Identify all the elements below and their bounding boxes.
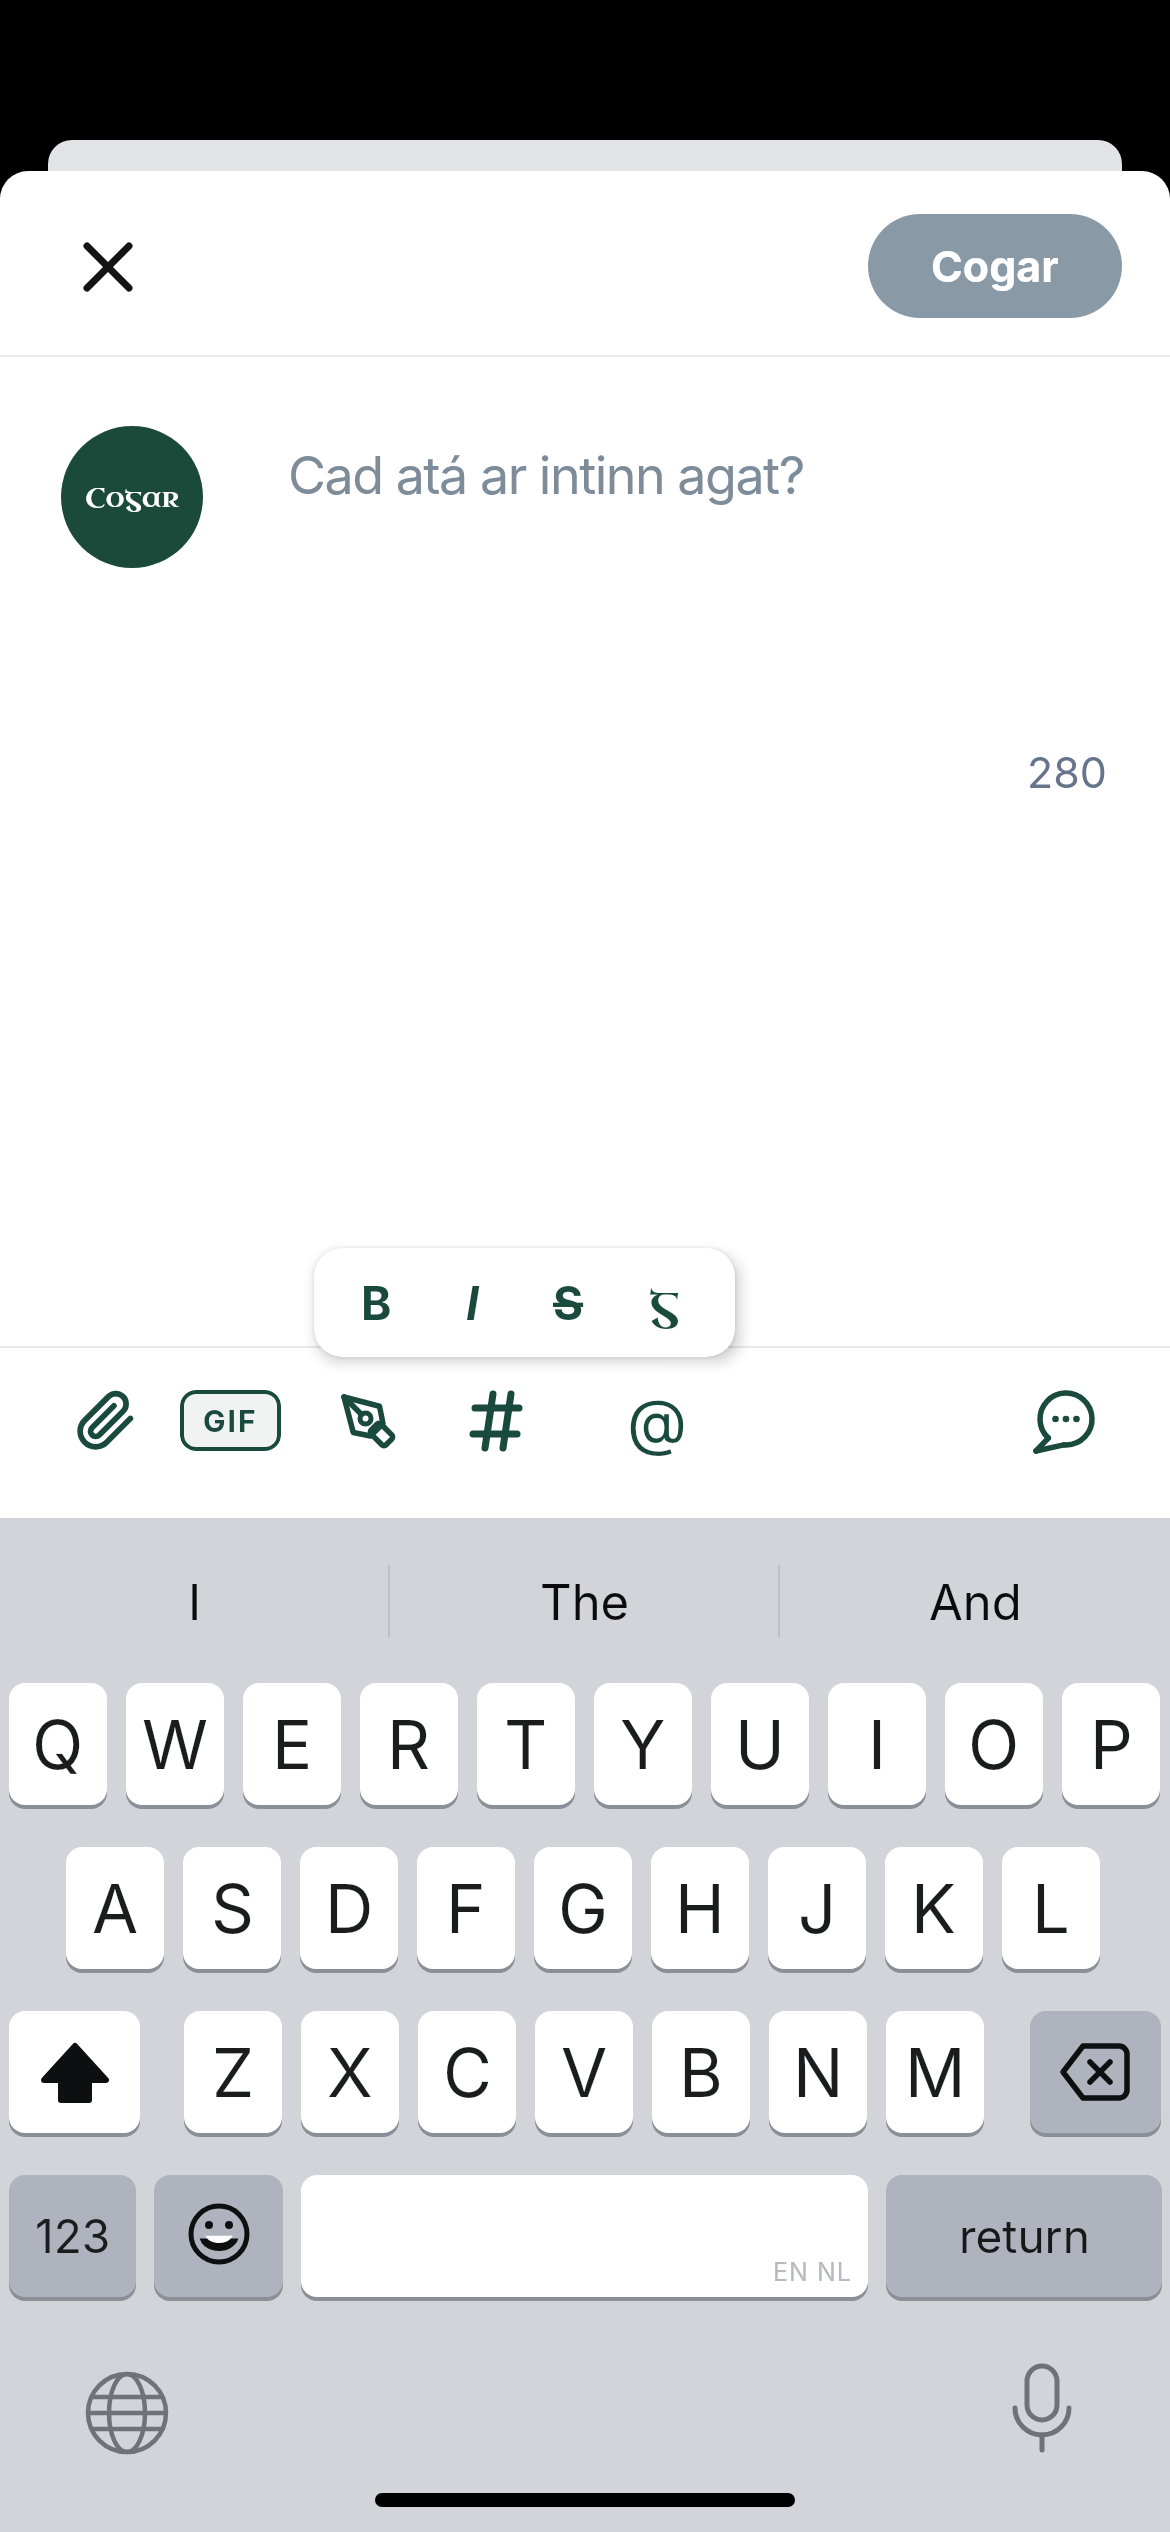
staticText: A — [92, 1868, 139, 1949]
button[interactable] — [328, 1381, 408, 1461]
staticText: L — [1032, 1868, 1070, 1949]
staticText: I — [868, 1704, 886, 1785]
button[interactable]: M — [886, 2011, 984, 2133]
button[interactable]: K — [885, 1847, 983, 1969]
button[interactable]: Y — [594, 1683, 692, 1805]
button[interactable]: N — [769, 2011, 867, 2133]
staticText: S — [553, 1275, 584, 1331]
staticText: P — [1090, 1704, 1133, 1785]
button[interactable] — [1023, 1381, 1103, 1461]
button[interactable]: T — [477, 1683, 575, 1805]
staticText: V — [561, 2032, 608, 2113]
staticText: Cogar — [85, 479, 180, 516]
button[interactable] — [154, 2175, 283, 2297]
staticText: M — [905, 2032, 966, 2113]
button[interactable] — [1030, 2011, 1161, 2133]
staticText: U — [735, 1704, 785, 1785]
button[interactable]: O — [945, 1683, 1043, 1805]
button[interactable] — [1002, 2365, 1082, 2455]
button[interactable]: E — [243, 1683, 341, 1805]
button[interactable]: Q — [9, 1683, 107, 1805]
button[interactable]: F — [417, 1847, 515, 1969]
button[interactable]: return — [886, 2175, 1162, 2297]
staticText: G — [558, 1868, 608, 1949]
button[interactable]: @ — [617, 1381, 697, 1461]
button[interactable]: S — [183, 1847, 281, 1969]
button[interactable]: EN NL — [301, 2175, 868, 2297]
staticText: J — [798, 1868, 837, 1949]
staticText: O — [968, 1704, 1020, 1785]
button[interactable]: B — [652, 2011, 750, 2133]
button[interactable]: The — [390, 1532, 780, 1672]
staticText: R — [387, 1704, 431, 1785]
button[interactable]: R — [360, 1683, 458, 1805]
button[interactable]: U — [711, 1683, 809, 1805]
staticText: T — [504, 1704, 548, 1785]
button[interactable]: P — [1062, 1683, 1160, 1805]
staticText: N — [793, 2032, 844, 2113]
button[interactable]: A — [66, 1847, 164, 1969]
staticText: H — [675, 1868, 725, 1949]
button[interactable]: V — [535, 2011, 633, 2133]
staticText: g — [649, 1270, 680, 1336]
staticText: D — [325, 1868, 374, 1949]
button[interactable]: L — [1002, 1847, 1100, 1969]
staticText: Cad atá ar intinn agat? — [288, 444, 804, 507]
staticText: C — [443, 2032, 492, 2113]
staticText: And — [929, 1573, 1022, 1632]
button[interactable] — [457, 1381, 537, 1461]
button[interactable]: GIF — [180, 1390, 281, 1451]
button[interactable]: Z — [184, 2011, 282, 2133]
button[interactable]: And — [780, 1532, 1170, 1672]
staticText: Cogar — [931, 240, 1059, 292]
staticText: Z — [212, 2032, 255, 2113]
staticText: K — [911, 1868, 957, 1949]
button[interactable] — [66, 1381, 146, 1461]
staticText: The — [540, 1573, 630, 1632]
button[interactable]: I — [828, 1683, 926, 1805]
button[interactable] — [87, 2373, 167, 2453]
button[interactable]: H — [651, 1847, 749, 1969]
button[interactable]: B — [356, 1248, 396, 1357]
staticText: @ — [627, 1384, 687, 1459]
staticText: Y — [620, 1704, 666, 1785]
staticText: B — [361, 1275, 392, 1331]
staticText: 123 — [35, 2208, 111, 2264]
staticText: Q — [32, 1704, 84, 1785]
staticText: X — [327, 2032, 373, 2113]
staticText: GIF — [203, 1403, 258, 1439]
button[interactable]: X — [301, 2011, 399, 2133]
button[interactable]: I — [0, 1532, 390, 1672]
staticText: W — [142, 1704, 209, 1785]
staticText: I — [466, 1275, 479, 1331]
staticText: B — [679, 2032, 723, 2113]
button[interactable]: D — [300, 1847, 398, 1969]
button[interactable]: G — [534, 1847, 632, 1969]
staticText: S — [211, 1868, 254, 1949]
button[interactable]: W — [126, 1683, 224, 1805]
button[interactable]: Cogar — [61, 426, 203, 568]
button[interactable] — [9, 2011, 140, 2133]
staticText: F — [446, 1868, 486, 1949]
staticText: I — [188, 1573, 202, 1632]
staticText: return — [959, 2208, 1090, 2264]
button[interactable]: g — [644, 1248, 684, 1357]
button[interactable]: S — [548, 1248, 588, 1357]
button[interactable]: Cogar — [868, 214, 1122, 318]
button[interactable]: J — [768, 1847, 866, 1969]
staticText: 280 — [1027, 746, 1107, 798]
staticText: EN NL — [773, 2257, 852, 2287]
button[interactable]: C — [418, 2011, 516, 2133]
button[interactable]: 123 — [9, 2175, 136, 2297]
button[interactable]: I — [452, 1248, 492, 1357]
staticText: E — [272, 1704, 313, 1785]
button[interactable] — [68, 227, 148, 307]
